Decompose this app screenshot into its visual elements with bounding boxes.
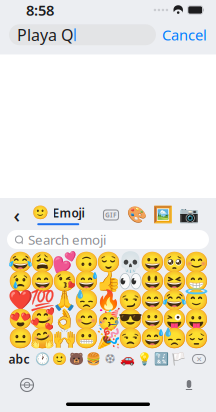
staticText: 🔥 [95, 289, 120, 312]
staticText: 😛 [183, 308, 208, 331]
button[interactable]: Emoji [119, 253, 141, 272]
staticText: 🙌 [51, 327, 76, 350]
staticText: 😊 [183, 251, 208, 274]
button[interactable]: Emoji [141, 310, 163, 329]
button[interactable]: Emoji [119, 310, 141, 329]
button[interactable]: Emoji [185, 329, 207, 348]
staticText: ❤️ [7, 289, 32, 312]
button[interactable]: Emoji [163, 291, 185, 310]
button[interactable]: Emoji [31, 310, 53, 329]
staticText: abc [8, 351, 29, 367]
button[interactable]: Emoji [119, 272, 141, 291]
button[interactable]: Emoji [141, 329, 163, 348]
staticText: 😢 [7, 270, 32, 293]
button[interactable]: Images [150, 204, 176, 226]
button[interactable]: Emoji [141, 291, 163, 310]
button[interactable]: Stickers [124, 204, 150, 226]
staticText: 📷 [179, 206, 199, 224]
button[interactable]: GIF [98, 204, 124, 226]
button[interactable]: Emoji [75, 291, 97, 310]
button[interactable]: Emoji [31, 272, 53, 291]
button[interactable]: Back [6, 204, 28, 226]
button[interactable]: Emoji [141, 253, 163, 272]
staticText: 😓 [73, 289, 98, 312]
staticText: 🥺 [161, 251, 186, 274]
button[interactable]: Category [84, 351, 101, 367]
staticText: 😓 [161, 327, 186, 350]
button[interactable]: Emoji [185, 291, 207, 310]
button[interactable]: Emoji [141, 272, 163, 291]
button[interactable]: Emoji [185, 272, 207, 291]
button[interactable]: Emoji [9, 329, 31, 348]
button[interactable]: Category [118, 351, 135, 367]
button[interactable]: Category [67, 351, 84, 367]
button[interactable]: Emoji [119, 329, 141, 348]
button[interactable]: Emoji [163, 253, 185, 272]
staticText: 🐻 [68, 352, 83, 366]
button[interactable]: Playa Q [9, 24, 156, 45]
button[interactable]: Category [135, 351, 152, 367]
staticText: 💡 [136, 352, 151, 366]
staticText: × [196, 353, 201, 365]
staticText: Search emoji [28, 231, 106, 248]
staticText: 😇 [183, 289, 208, 312]
button[interactable]: abc [7, 351, 31, 367]
button[interactable]: Search emoji [7, 230, 209, 249]
button[interactable]: Emoji [97, 253, 119, 272]
button[interactable]: Emoji [9, 310, 31, 329]
button[interactable]: Emoji [185, 310, 207, 329]
button[interactable]: Category [101, 351, 118, 367]
button[interactable]: Emoji [53, 253, 75, 272]
button[interactable]: Emoji [75, 329, 97, 348]
staticText: 😒 [117, 327, 142, 350]
button[interactable]: Dictation [176, 372, 202, 398]
staticText: 😂 [161, 289, 186, 312]
staticText: GIF [105, 211, 117, 219]
button[interactable]: Emoji [185, 253, 207, 272]
button[interactable]: Category [33, 351, 50, 367]
button[interactable]: 🙂 [28, 205, 88, 225]
staticText: 😜 [161, 308, 186, 331]
staticText: 🍔 [85, 352, 100, 366]
button[interactable]: Delete [189, 351, 209, 367]
button[interactable]: Emoji [163, 272, 185, 291]
button[interactable]: Emoji [53, 310, 75, 329]
staticText: 🙏 [51, 289, 76, 312]
button[interactable]: Emoji [9, 272, 31, 291]
staticText: 👍 [95, 270, 120, 293]
button[interactable]: Category [152, 351, 169, 367]
button[interactable]: Emoji [97, 329, 119, 348]
staticText: ⚽︎ [105, 353, 115, 365]
button[interactable]: Emoji [53, 329, 75, 348]
button[interactable]: Emoji [119, 291, 141, 310]
staticText: 🎉 [95, 327, 120, 350]
button[interactable]: Emoji [75, 272, 97, 291]
button[interactable]: Emoji [31, 329, 53, 348]
button[interactable]: Emoji [53, 272, 75, 291]
staticText: 🕐 [34, 352, 49, 366]
staticText: Playa Q [17, 24, 73, 45]
button[interactable]: Emoji [53, 291, 75, 310]
button[interactable]: Emoji [163, 310, 185, 329]
button[interactable]: Emoji [31, 253, 53, 272]
button[interactable]: Category [50, 351, 67, 367]
button[interactable]: Next keyboard [14, 372, 40, 398]
button[interactable]: Emoji [97, 272, 119, 291]
button[interactable]: Emoji [31, 291, 53, 310]
button[interactable]: Emoji [9, 253, 31, 272]
button[interactable]: Camera [176, 204, 202, 226]
button[interactable]: Cancel [162, 22, 207, 47]
staticText: 8:58 [26, 0, 54, 20]
staticText: 😃 [139, 270, 164, 293]
button[interactable]: Emoji [75, 253, 97, 272]
button[interactable]: Emoji [97, 291, 119, 310]
button[interactable]: Emoji [75, 310, 97, 329]
button[interactable]: Emoji [97, 310, 119, 329]
staticText: 😁 [183, 270, 208, 293]
staticText: 🤗 [29, 327, 54, 350]
staticText: 🏳️ [170, 352, 185, 366]
button[interactable]: Emoji [163, 329, 185, 348]
button[interactable]: Emoji [9, 291, 31, 310]
staticText: 😘 [51, 270, 76, 293]
button[interactable]: Category [169, 351, 186, 367]
